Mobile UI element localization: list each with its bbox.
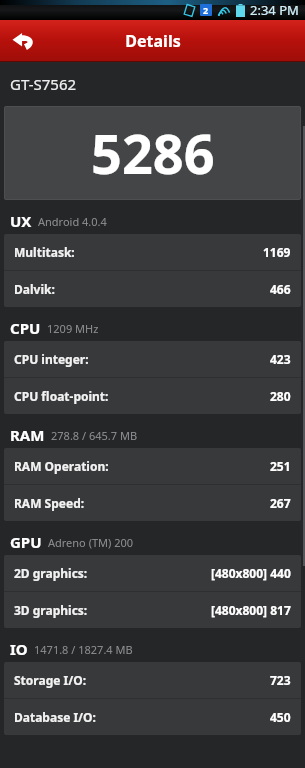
staticText: Android 4.0.4 (38, 214, 107, 229)
staticText: 280 (270, 388, 291, 404)
staticText: 450 (270, 709, 291, 725)
button[interactable]: 2D graphics: (4, 555, 301, 591)
staticText: GPU (10, 532, 42, 552)
button[interactable]: CPU integer: (4, 341, 301, 377)
button[interactable]: Database I/O: (4, 699, 301, 735)
button[interactable]: Storage I/O: (4, 662, 301, 698)
button[interactable]: CPU float-point: (4, 378, 301, 414)
staticText: Storage I/O: (14, 672, 87, 688)
staticText: 466 (270, 281, 291, 297)
staticText: RAM Operation: (14, 458, 109, 474)
staticText: 2D graphics: (14, 565, 88, 581)
staticText: 3D graphics: (14, 602, 88, 618)
staticText: [480x800] 440 (211, 565, 291, 581)
staticText: 278.8 / 645.7 MB (51, 428, 138, 443)
button[interactable]: Multitask: (4, 234, 301, 270)
staticText: Dalvik: (14, 281, 55, 297)
staticText: 267 (270, 495, 291, 511)
staticText: Adreno (TM) 200 (48, 535, 134, 550)
staticText: 1209 MHz (47, 321, 99, 336)
staticText: 5286 (91, 116, 215, 190)
staticText: 2 (203, 4, 209, 16)
staticText: IO (10, 639, 28, 659)
button[interactable]: RAM Operation: (4, 448, 301, 484)
staticText: 423 (270, 351, 291, 367)
button[interactable]: RAM Speed: (4, 485, 301, 521)
staticText: 723 (270, 672, 291, 688)
staticText: CPU float-point: (14, 388, 109, 404)
button[interactable]: Back (0, 20, 48, 62)
staticText: RAM Speed: (14, 495, 85, 511)
staticText: GT-S7562 (10, 74, 77, 94)
staticText: 1169 (263, 244, 291, 260)
staticText: RAM (10, 425, 45, 445)
staticText: CPU integer: (14, 351, 89, 367)
staticText: 251 (270, 458, 291, 474)
staticText: 1471.8 / 1827.4 MB (34, 642, 133, 657)
staticText: 2:34 PM (250, 1, 299, 19)
button[interactable]: Dalvik: (4, 271, 301, 307)
staticText: Database I/O: (14, 709, 96, 725)
staticText: [480x800] 817 (211, 602, 291, 618)
staticText: Multitask: (14, 244, 75, 260)
staticText: UX (10, 211, 32, 231)
staticText: CPU (10, 318, 41, 338)
button[interactable]: 3D graphics: (4, 592, 301, 628)
staticText: Details (125, 30, 181, 52)
